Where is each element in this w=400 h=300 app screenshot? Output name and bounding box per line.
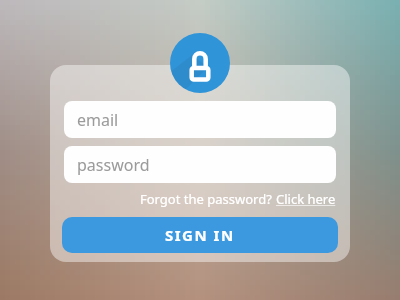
staticText: password bbox=[77, 154, 150, 176]
staticText: SIGN IN bbox=[165, 225, 235, 245]
staticText: Forgot the password? bbox=[140, 190, 276, 208]
staticText: email bbox=[77, 109, 119, 131]
button[interactable]: password bbox=[64, 146, 336, 183]
button[interactable] bbox=[170, 33, 230, 93]
button[interactable]: SIGN IN bbox=[62, 217, 338, 253]
button[interactable]: Click here bbox=[276, 190, 336, 208]
button[interactable]: email bbox=[64, 101, 336, 138]
